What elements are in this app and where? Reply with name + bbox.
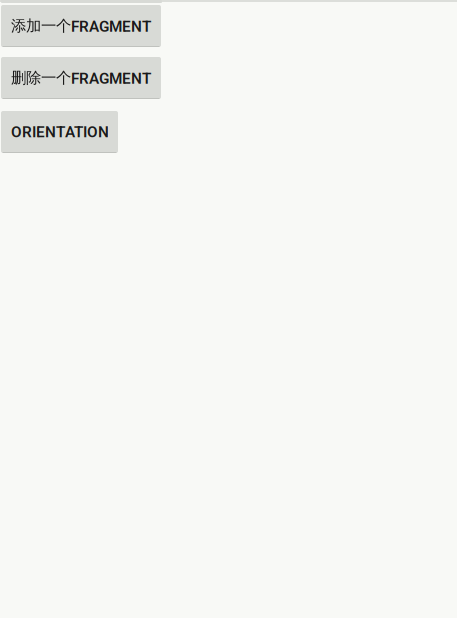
staticText: 删除一个FRAGMENT (11, 68, 151, 88)
button[interactable]: ORIENTATION (1, 111, 118, 153)
button[interactable]: 删除一个FRAGMENT (1, 57, 161, 99)
staticText: ORIENTATION (11, 123, 109, 141)
button[interactable]: 添加一个FRAGMENT (1, 5, 161, 47)
staticText: 添加一个FRAGMENT (11, 16, 151, 36)
